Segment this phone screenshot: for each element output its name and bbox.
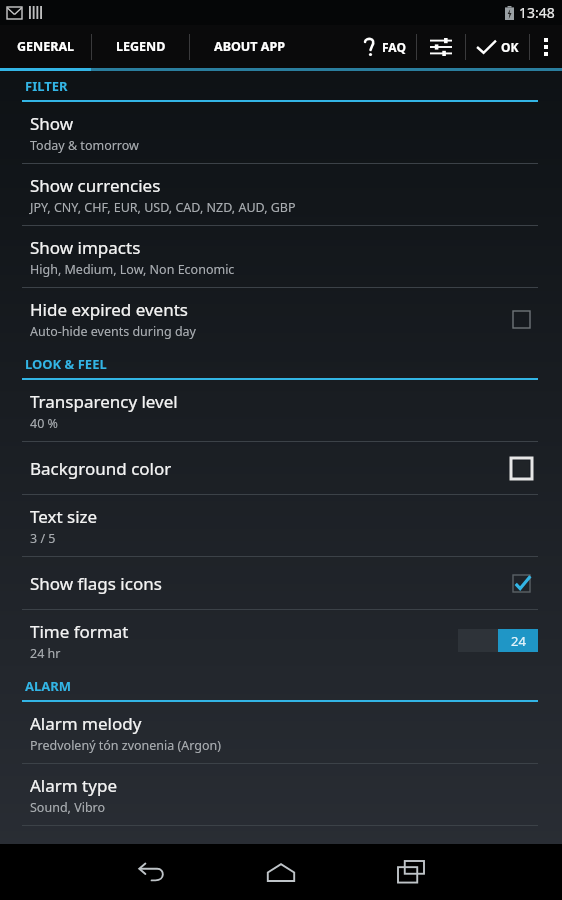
button[interactable]: Show: [0, 102, 562, 163]
staticText: Transparency level: [30, 390, 178, 413]
staticText: Today & tomorrow: [30, 137, 139, 154]
staticText: 13:48: [519, 3, 555, 22]
staticText: 3 / 5: [30, 530, 56, 547]
button[interactable]: LEGEND: [92, 25, 189, 68]
staticText: Alarm type: [30, 774, 117, 797]
button[interactable]: Background color: [0, 442, 562, 494]
staticText: 24 hr: [30, 645, 61, 662]
button[interactable]: Settings: [417, 25, 465, 68]
button[interactable]: Time format: [0, 610, 562, 671]
staticText: Hide expired events: [30, 298, 188, 321]
button[interactable]: More options: [530, 25, 562, 68]
button[interactable]: Home: [216, 844, 346, 900]
staticText: LOOK & FEEL: [25, 355, 107, 373]
staticText: Show: [30, 112, 74, 135]
button[interactable]: Back: [86, 844, 216, 900]
staticText: FAQ: [382, 39, 406, 55]
button[interactable]: Text size: [0, 495, 562, 556]
staticText: 24: [511, 632, 526, 650]
button[interactable]: ABOUT APP: [190, 25, 308, 68]
button[interactable]: FAQ: [354, 25, 416, 68]
staticText: Auto-hide events during day: [30, 323, 196, 340]
button[interactable]: Show flags icons checkbox: [504, 566, 538, 600]
button[interactable]: Show currencies: [0, 164, 562, 225]
button[interactable]: Transparency level: [0, 380, 562, 441]
staticText: LEGEND: [116, 38, 166, 55]
staticText: OK: [501, 39, 519, 55]
staticText: Sound, Vibro: [30, 799, 106, 816]
button[interactable]: Alarm melody: [0, 702, 562, 763]
staticText: Alarm melody: [30, 712, 142, 735]
staticText: ABOUT APP: [214, 38, 285, 55]
staticText: High, Medium, Low, Non Economic: [30, 261, 235, 278]
staticText: ALARM: [25, 677, 72, 695]
staticText: Background color: [30, 457, 172, 480]
staticText: Predvolený tón zvonenia (Argon): [30, 737, 222, 754]
staticText: Time format: [30, 620, 129, 643]
staticText: GENERAL: [17, 38, 75, 55]
staticText: Show impacts: [30, 236, 141, 259]
button[interactable]: Time format 24 hour: [458, 629, 538, 652]
button[interactable]: Hide expired events: [0, 288, 562, 349]
staticText: FILTER: [25, 77, 68, 95]
staticText: Show currencies: [30, 174, 161, 197]
staticText: JPY, CNY, CHF, EUR, USD, CAD, NZD, AUD, …: [30, 199, 296, 216]
staticText: Text size: [30, 505, 98, 528]
button[interactable]: OK: [466, 25, 529, 68]
button[interactable]: GENERAL: [0, 25, 91, 68]
button[interactable]: Show impacts: [0, 226, 562, 287]
button[interactable]: Recent apps: [346, 844, 476, 900]
staticText: Show flags icons: [30, 572, 162, 595]
staticText: 40 %: [30, 415, 58, 432]
button[interactable]: Hide expired events checkbox: [504, 302, 538, 336]
button[interactable]: Background color: [504, 451, 538, 485]
button[interactable]: Show flags icons: [0, 557, 562, 609]
button[interactable]: Alarm type: [0, 764, 562, 825]
